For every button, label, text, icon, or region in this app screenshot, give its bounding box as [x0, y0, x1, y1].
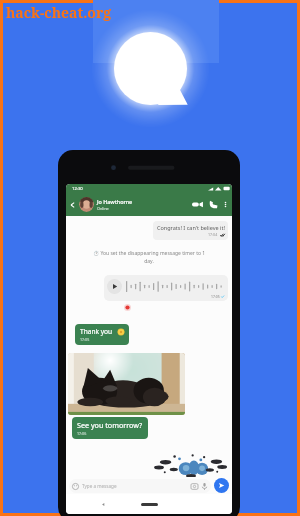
staticText: 12:30 [72, 186, 83, 192]
button[interactable]: Type a message [72, 479, 208, 493]
staticText: 17:04 [208, 232, 218, 237]
button[interactable]: Send [214, 478, 229, 493]
staticText: hack-cheat.org [6, 3, 112, 22]
button[interactable]: Video call [191, 198, 204, 211]
button[interactable]: Home [141, 503, 158, 506]
staticText: Type a message [82, 483, 117, 489]
staticText: ⏱ You set the disappearing message timer… [91, 250, 207, 264]
staticText: Online [97, 206, 109, 211]
button[interactable]: Play [107, 279, 122, 294]
staticText: Congrats! I can't believe it! [157, 224, 225, 231]
staticText: Thank you [80, 327, 113, 336]
staticText: 17:05 [211, 294, 220, 299]
button[interactable]: Call [208, 199, 219, 210]
button[interactable]: More options [222, 201, 229, 208]
staticText: 17:05 [80, 337, 90, 342]
button[interactable]: Back [100, 501, 107, 508]
staticText: See you tomorrow? [77, 420, 143, 430]
staticText: Jo Hawthorne [97, 198, 133, 205]
button[interactable]: Back [68, 200, 78, 210]
staticText: 17:06 [77, 431, 87, 436]
